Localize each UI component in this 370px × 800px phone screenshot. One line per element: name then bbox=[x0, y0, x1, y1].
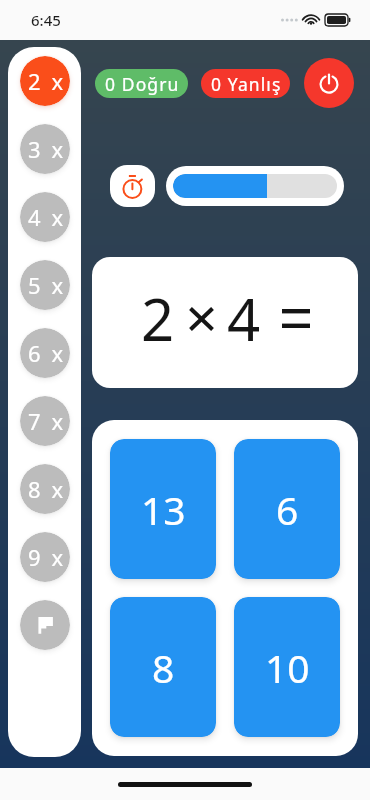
staticText: 5 x bbox=[28, 270, 66, 300]
staticText: 6 x bbox=[28, 338, 66, 368]
button[interactable]: 8 x bbox=[20, 464, 70, 514]
staticText: 9 x bbox=[28, 542, 66, 572]
button[interactable]: 4 x bbox=[20, 192, 70, 242]
button[interactable]: Flag bbox=[20, 600, 70, 650]
button[interactable]: 3 x bbox=[20, 124, 70, 174]
button[interactable]: 13 bbox=[110, 439, 216, 579]
staticText: 13 bbox=[141, 483, 186, 536]
button[interactable]: 7 x bbox=[20, 396, 70, 446]
staticText: 8 bbox=[152, 641, 175, 694]
staticText: 6 bbox=[276, 483, 299, 536]
staticText: 2 x bbox=[28, 66, 66, 96]
button[interactable]: 0 Yanlış bbox=[201, 69, 290, 98]
staticText: 10 bbox=[265, 641, 310, 694]
staticText: 3 x bbox=[28, 134, 66, 164]
staticText: 8 x bbox=[28, 474, 66, 504]
staticText: 4 bbox=[227, 279, 261, 358]
staticText: 0 Doğru bbox=[105, 72, 180, 96]
button[interactable]: 6 bbox=[234, 439, 340, 579]
button[interactable]: 9 x bbox=[20, 532, 70, 582]
button[interactable]: Timer bbox=[110, 165, 155, 207]
button[interactable]: 6 x bbox=[20, 328, 70, 378]
staticText: 4 x bbox=[28, 202, 66, 232]
button[interactable]: 0 Doğru bbox=[95, 69, 188, 98]
button[interactable]: 8 bbox=[110, 597, 216, 737]
staticText: 7 x bbox=[28, 406, 66, 436]
staticText: 0 Yanlış bbox=[211, 72, 282, 96]
button[interactable]: 2 x bbox=[20, 56, 70, 106]
button[interactable]: 10 bbox=[234, 597, 340, 737]
staticText: 6:45 bbox=[31, 10, 61, 30]
button[interactable]: 5 x bbox=[20, 260, 70, 310]
staticText: 2 bbox=[141, 279, 175, 358]
button[interactable]: Power / restart bbox=[304, 58, 354, 108]
